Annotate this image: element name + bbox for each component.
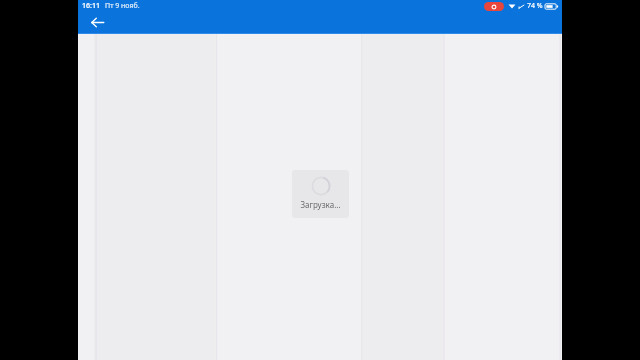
- staticText: Пт 9 нояб.: [105, 1, 140, 11]
- button[interactable]: Назад: [82, 12, 112, 33]
- staticText: Загрузка...: [300, 199, 341, 210]
- staticText: 74 %: [527, 1, 543, 11]
- staticText: 16:11: [82, 1, 100, 11]
